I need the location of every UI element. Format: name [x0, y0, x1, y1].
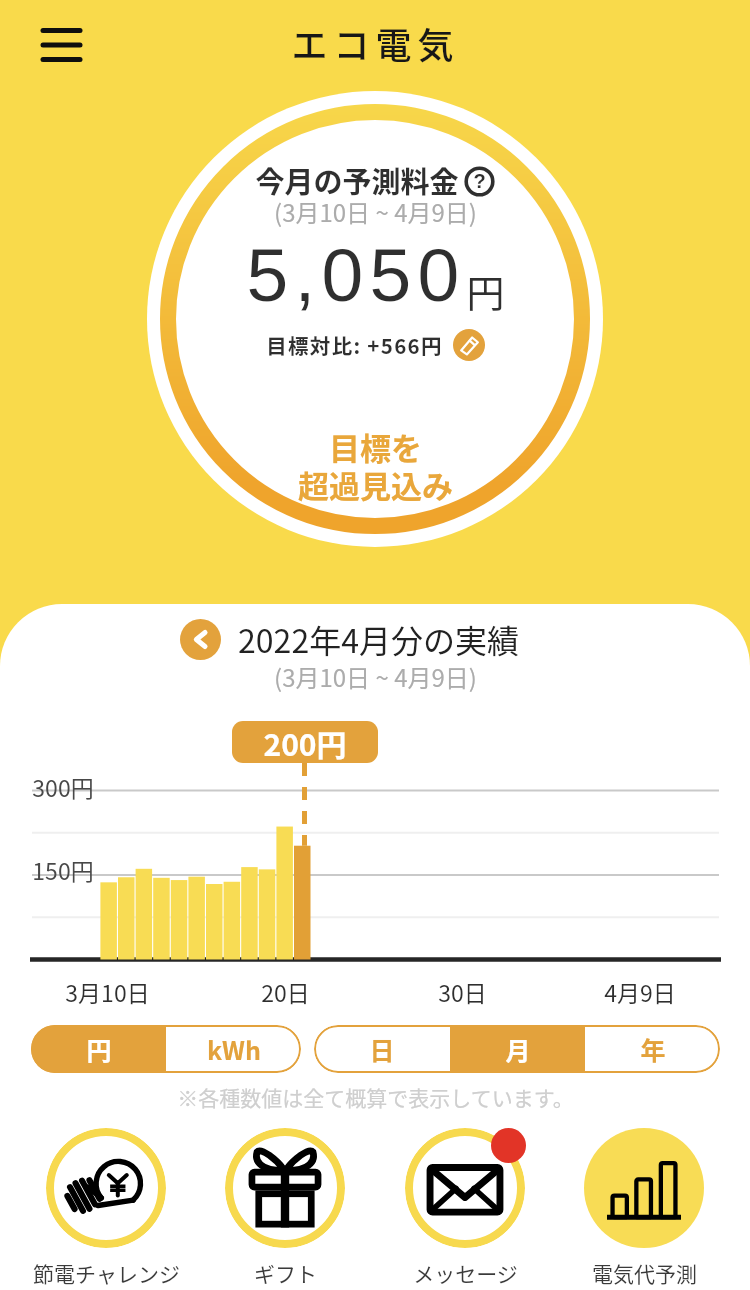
staticText: 月	[505, 1031, 531, 1067]
staticText: メッセージ	[413, 1258, 518, 1288]
button[interactable]: メッセージ	[390, 1128, 540, 1284]
staticText: ※各種数値は全て概算で表示しています。	[177, 1082, 574, 1112]
staticText: 30日	[438, 975, 487, 1008]
staticText: 150円	[32, 853, 94, 886]
button[interactable]: 日	[314, 1025, 450, 1073]
button[interactable]: Previous month	[180, 619, 221, 660]
staticText: 5,050	[246, 233, 466, 317]
staticText: kWh	[207, 1031, 261, 1067]
staticText: エコ電気	[291, 17, 460, 69]
staticText: 目標を	[329, 424, 422, 469]
staticText: 200円	[263, 721, 347, 763]
staticText: 2022年4月分の実績	[238, 616, 519, 662]
staticText: 300円	[32, 770, 94, 803]
staticText: (3月10日 ~ 4月9日)	[274, 659, 477, 694]
button[interactable]: 年	[585, 1025, 720, 1073]
staticText: 円	[86, 1031, 112, 1067]
staticText: ?	[473, 170, 486, 192]
staticText: 3月10日	[65, 975, 150, 1008]
button[interactable]: Menu	[32, 12, 90, 76]
staticText: 節電チャレンジ	[33, 1258, 180, 1288]
button[interactable]: ギフト	[210, 1128, 360, 1284]
button[interactable]: kWh	[166, 1025, 301, 1073]
staticText: (3月10日 ~ 4月9日)	[274, 194, 477, 229]
button[interactable]: Edit target	[453, 329, 485, 361]
staticText: 日	[369, 1031, 395, 1067]
staticText: 今月の予測料金	[255, 159, 459, 201]
staticText: ギフト	[254, 1258, 317, 1288]
staticText: 年	[640, 1031, 666, 1067]
staticText: 円	[466, 263, 505, 318]
button[interactable]: 200円	[232, 721, 378, 763]
button[interactable]: 節電チャレンジ	[31, 1128, 181, 1284]
button[interactable]: 電気代予測	[569, 1128, 719, 1284]
staticText: 20日	[261, 975, 310, 1008]
staticText: 目標対比: +566円	[266, 330, 443, 360]
button[interactable]: 月	[450, 1025, 585, 1073]
staticText: 4月9日	[604, 975, 676, 1008]
button[interactable]: 円	[31, 1025, 166, 1073]
staticText: 超過見込み	[298, 462, 453, 507]
button[interactable]: Help	[464, 166, 495, 197]
staticText: 電気代予測	[592, 1258, 697, 1288]
